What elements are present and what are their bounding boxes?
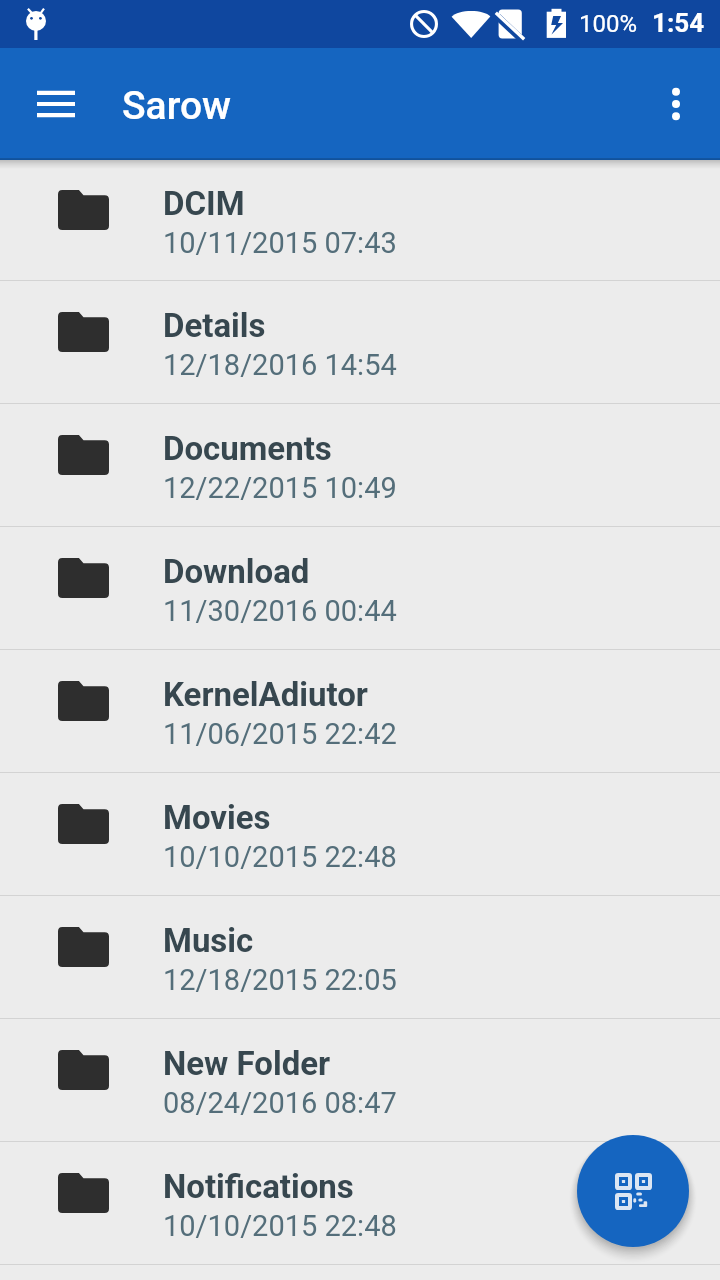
- staticText: 1:54: [652, 8, 705, 38]
- staticText: 12/18/2015 22:05: [163, 963, 397, 997]
- staticText: KernelAdiutor: [163, 675, 368, 714]
- staticText: 12/18/2016 14:54: [163, 348, 397, 382]
- staticText: 10/10/2015 22:48: [163, 1209, 397, 1243]
- button[interactable]: Notifications: [0, 1142, 720, 1265]
- staticText: Details: [163, 306, 266, 345]
- staticText: 11/06/2015 22:42: [163, 717, 397, 751]
- staticText: 10/11/2015 07:43: [163, 226, 397, 260]
- staticText: Notifications: [163, 1167, 354, 1206]
- staticText: 12/22/2015 10:49: [163, 471, 397, 505]
- staticText: Sarow: [122, 83, 232, 129]
- staticText: New Folder: [163, 1044, 331, 1083]
- button[interactable]: DCIM: [0, 160, 720, 281]
- button[interactable]: Scan QR code: [577, 1135, 689, 1247]
- staticText: 100%: [579, 10, 638, 38]
- staticText: 11/30/2016 00:44: [163, 594, 397, 628]
- staticText: 10/10/2015 22:48: [163, 840, 397, 874]
- staticText: Download: [163, 552, 310, 591]
- staticText: 08/24/2016 08:47: [163, 1086, 397, 1120]
- button[interactable]: Movies: [0, 773, 720, 896]
- button[interactable]: Open navigation drawer: [12, 56, 100, 152]
- staticText: Music: [163, 921, 254, 960]
- button[interactable]: Details: [0, 281, 720, 404]
- button[interactable]: Download: [0, 527, 720, 650]
- button[interactable]: Music: [0, 896, 720, 1019]
- staticText: Documents: [163, 429, 332, 468]
- button[interactable]: KernelAdiutor: [0, 650, 720, 773]
- staticText: DCIM: [163, 184, 245, 223]
- button[interactable]: Documents: [0, 404, 720, 527]
- staticText: Movies: [163, 798, 271, 837]
- button[interactable]: More options: [632, 56, 720, 152]
- button[interactable]: New Folder: [0, 1019, 720, 1142]
